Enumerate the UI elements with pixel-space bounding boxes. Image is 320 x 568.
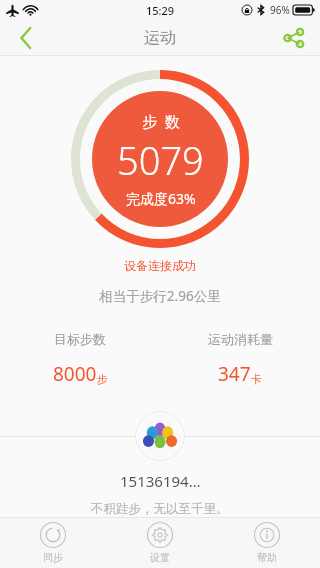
staticText: 完成度63% — [126, 189, 196, 208]
staticText: 步 — [97, 372, 108, 386]
staticText: 帮助 — [257, 551, 277, 564]
staticText: 同步 — [43, 551, 63, 564]
staticText: 15136194… — [120, 471, 201, 491]
staticText: 相当于步行2.96公里 — [0, 287, 320, 305]
button[interactable]: 帮助 — [213, 518, 320, 568]
button[interactable]: Account logo — [135, 411, 185, 461]
button[interactable]: 同步 — [0, 518, 106, 568]
staticText: 不积跬步，无以至千里。 — [91, 501, 229, 517]
staticText: 运动 — [144, 28, 176, 48]
button[interactable]: 步 数 — [92, 91, 228, 227]
button[interactable]: Share — [268, 20, 320, 56]
staticText: 设置 — [150, 551, 170, 564]
staticText: 15:29 — [146, 3, 175, 18]
staticText: 步 数 — [142, 111, 180, 131]
staticText: 8000 — [53, 361, 97, 387]
staticText: 目标步数 — [54, 331, 106, 347]
button[interactable]: 设置 — [106, 518, 213, 568]
staticText: 5079 — [117, 134, 204, 186]
staticText: 设备连接成功 — [0, 258, 320, 273]
button[interactable]: 目标步数 — [0, 329, 160, 389]
button[interactable]: 运动消耗量 — [160, 329, 320, 389]
button[interactable]: Back — [0, 20, 52, 56]
staticText: 347 — [218, 361, 251, 387]
staticText: 96% — [270, 3, 290, 17]
staticText: 卡 — [251, 372, 262, 386]
staticText: 运动消耗量 — [208, 331, 273, 347]
